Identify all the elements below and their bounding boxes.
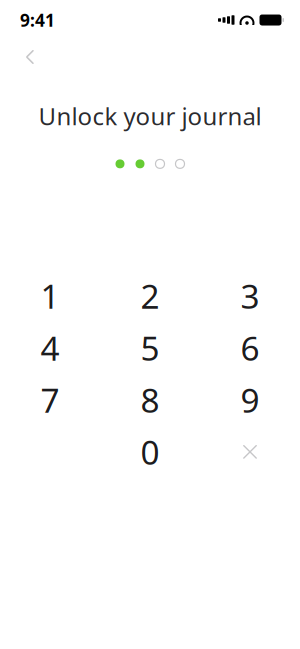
button[interactable]: 1: [0, 270, 100, 322]
staticText: 4: [40, 326, 59, 370]
staticText: 9: [240, 378, 259, 422]
staticText: 7: [40, 378, 59, 422]
staticText: 8: [140, 378, 159, 422]
button[interactable]: 7: [0, 374, 100, 426]
staticText: 6: [240, 326, 259, 370]
staticText: Unlock your journal: [38, 100, 261, 132]
staticText: 9:41: [20, 8, 55, 31]
button[interactable]: 9: [200, 374, 300, 426]
button[interactable]: 3: [200, 270, 300, 322]
button[interactable]: 2: [100, 270, 200, 322]
button[interactable]: 8: [100, 374, 200, 426]
button[interactable]: Delete: [200, 426, 300, 478]
button[interactable]: 5: [100, 322, 200, 374]
staticText: 2: [140, 274, 159, 318]
staticText: 3: [240, 274, 259, 318]
button[interactable]: Back: [8, 40, 52, 74]
button[interactable]: 0: [100, 426, 200, 478]
button[interactable]: 6: [200, 322, 300, 374]
staticText: 5: [140, 326, 159, 370]
staticText: 0: [140, 430, 159, 474]
staticText: 1: [40, 274, 59, 318]
button[interactable]: 4: [0, 322, 100, 374]
